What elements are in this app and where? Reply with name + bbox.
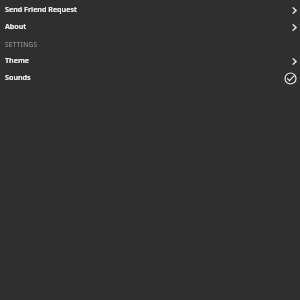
staticText: About xyxy=(5,21,27,31)
other: Open About xyxy=(292,24,297,31)
staticText: Theme xyxy=(5,55,29,65)
button[interactable]: About xyxy=(0,17,300,34)
other: Sounds enabled xyxy=(284,72,297,85)
other: Open Send Friend Request xyxy=(292,7,297,14)
staticText: Send Friend Request xyxy=(5,4,77,14)
staticText: SETTINGS xyxy=(5,40,38,49)
staticText: Sounds xyxy=(5,72,31,82)
other: Open Theme xyxy=(292,58,297,65)
button[interactable]: Send Friend Request xyxy=(0,0,300,17)
button[interactable]: Theme xyxy=(0,51,300,68)
button[interactable]: Sounds xyxy=(0,68,300,85)
